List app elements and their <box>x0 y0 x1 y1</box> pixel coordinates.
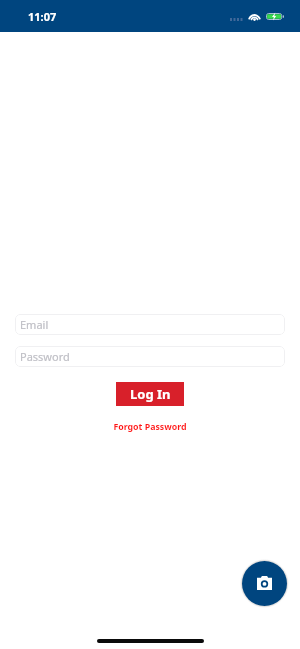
staticText: 11:07 <box>28 9 57 24</box>
staticText: Log In <box>130 385 171 403</box>
button[interactable]: Log In <box>116 382 184 406</box>
staticText: Password <box>20 349 70 364</box>
staticText: Forgot Password <box>113 421 187 433</box>
button[interactable]: Email <box>15 314 285 335</box>
staticText: Email <box>20 317 49 332</box>
button[interactable]: Take photo <box>242 561 287 606</box>
button[interactable]: Password <box>15 346 285 367</box>
button[interactable]: Forgot Password <box>109 419 191 435</box>
